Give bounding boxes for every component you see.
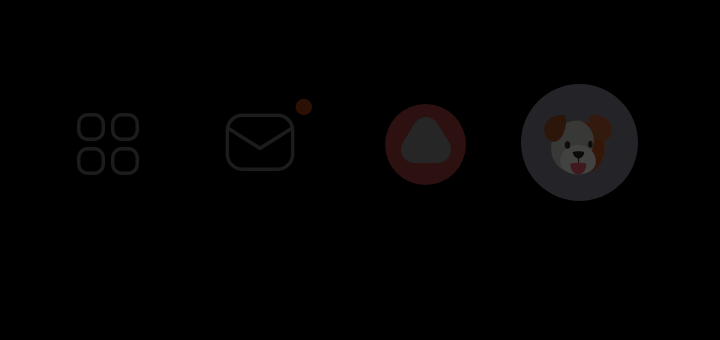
button[interactable]: Mail [214, 94, 318, 182]
button[interactable]: Record [383, 102, 468, 187]
button[interactable]: Apps [69, 105, 147, 183]
button[interactable]: Profile [521, 84, 638, 201]
